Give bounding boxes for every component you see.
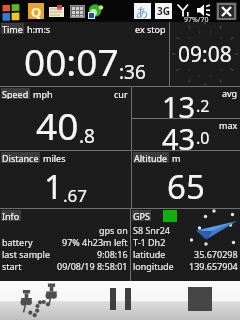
staticText: 65 — [167, 164, 205, 208]
staticText: ex stop — [135, 23, 166, 35]
staticText: 3G — [157, 4, 170, 18]
staticText: 40 — [36, 100, 79, 150]
staticText: .2 — [196, 95, 210, 117]
button[interactable]: Waypoints — [18, 281, 62, 319]
button[interactable]: Stop — [184, 283, 216, 315]
staticText: gps on — [99, 224, 128, 236]
staticText: longitude — [133, 260, 174, 272]
staticText: latitude — [133, 248, 166, 260]
staticText: Time — [2, 23, 23, 34]
staticText: Distance — [2, 152, 39, 163]
staticText: mph — [33, 88, 53, 100]
staticText: 35.670298 — [194, 248, 238, 260]
staticText: Info — [2, 210, 20, 221]
staticText: .0 — [196, 127, 210, 149]
staticText: 9:08:16 — [97, 248, 128, 260]
staticText: 43 — [162, 119, 196, 150]
staticText: Q — [31, 3, 42, 19]
button[interactable]: Close — [216, 2, 237, 20]
staticText: 00:07 — [24, 36, 119, 86]
staticText: 139.657904 — [189, 260, 238, 272]
staticText: max — [219, 119, 238, 131]
staticText: GPS — [133, 210, 150, 221]
button[interactable]: Pause — [106, 284, 136, 315]
staticText: start — [2, 260, 22, 272]
staticText: m — [172, 152, 181, 164]
staticText: 97% 4h23m left — [62, 236, 128, 248]
staticText: last sample — [2, 248, 50, 260]
staticText: Altitude — [134, 152, 168, 163]
staticText: S8 Snr24 — [133, 224, 170, 236]
staticText: 09/08/19 8:58:01 — [57, 260, 128, 272]
staticText: miles — [43, 152, 66, 164]
staticText: あ — [136, 4, 149, 19]
staticText: cur — [114, 88, 128, 100]
staticText: h:m:s — [27, 23, 51, 35]
staticText: Speed — [2, 88, 29, 99]
staticText: :36 — [119, 59, 146, 85]
staticText: .8 — [79, 123, 95, 149]
staticText: avg — [222, 87, 238, 99]
staticText: battery — [2, 236, 33, 248]
staticText: 13 — [162, 87, 196, 118]
staticText: 1 — [44, 164, 63, 208]
staticText: 09:08 — [178, 40, 232, 69]
staticText: T-1 Dh2 — [133, 236, 166, 248]
staticText: .67 — [63, 184, 88, 207]
staticText: 97%/70 — [184, 15, 209, 25]
